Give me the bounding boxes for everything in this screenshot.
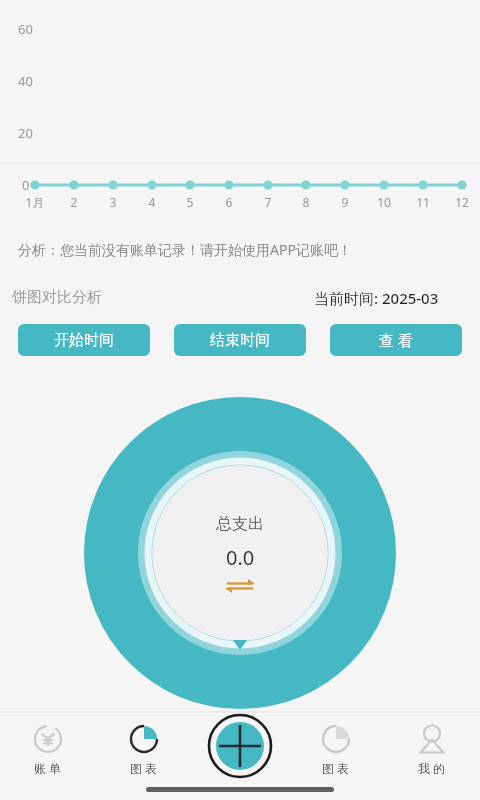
staticText: 2: [58, 194, 90, 210]
staticText: 账 单: [34, 760, 62, 776]
staticText: 当前时间: 2025-03: [314, 288, 439, 308]
staticText: 5: [174, 194, 206, 210]
staticText: 查 看: [379, 330, 413, 350]
staticText: 我 的: [418, 760, 446, 776]
button[interactable]: 开始时间: [18, 324, 150, 356]
staticText: 20: [18, 124, 33, 142]
staticText: 图 表: [322, 760, 350, 776]
staticText: 总支出: [216, 514, 264, 534]
button[interactable]: 账 单: [0, 712, 96, 800]
staticText: 分析：您当前没有账单记录！请开始使用APP记账吧！: [18, 240, 352, 259]
staticText: 图 表: [130, 760, 158, 776]
button[interactable]: 图 表: [96, 712, 192, 800]
staticText: 饼图对比分析: [12, 288, 102, 307]
button[interactable]: 记一笔: [207, 713, 273, 779]
staticText: 11: [407, 194, 439, 210]
staticText: 60: [18, 20, 33, 38]
staticText: 4: [136, 194, 168, 210]
staticText: 0.0: [226, 544, 255, 571]
staticText: 1月: [19, 194, 51, 210]
staticText: 结束时间: [210, 331, 270, 350]
staticText: 6: [213, 194, 245, 210]
staticText: 0: [22, 176, 30, 194]
staticText: 3: [97, 194, 129, 210]
staticText: 7: [252, 194, 284, 210]
button[interactable]: 查 看: [330, 324, 462, 356]
button[interactable]: 图 表: [288, 712, 384, 800]
staticText: 40: [18, 72, 33, 90]
button[interactable]: 支出饼图: [84, 397, 396, 709]
button[interactable]: 我 的: [384, 712, 480, 800]
staticText: 12: [446, 194, 478, 210]
staticText: 8: [290, 194, 322, 210]
staticText: 开始时间: [54, 331, 114, 350]
staticText: 10: [368, 194, 400, 210]
button[interactable]: 结束时间: [174, 324, 306, 356]
staticText: 9: [329, 194, 361, 210]
